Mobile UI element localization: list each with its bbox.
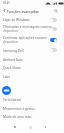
button[interactable]: Labs illustration [2, 86, 11, 95]
staticText: Labs [3, 75, 10, 79]
staticText: Chamadas e mensagens noutros [3, 25, 53, 29]
staticText: Android Auto [3, 58, 23, 62]
staticText: Continuar aplicações noutros [3, 36, 47, 40]
button[interactable]: Switch off [50, 18, 57, 22]
button[interactable] [0, 113, 64, 121]
button[interactable] [0, 15, 64, 24]
button[interactable] [0, 24, 64, 35]
staticText: dispositivos [3, 40, 18, 44]
button[interactable]: Recent apps [11, 123, 19, 131]
staticText: 09:45 [3, 1, 10, 5]
staticText: Ligar ao Windows [3, 18, 30, 22]
button[interactable]: Back [1, 7, 7, 13]
button[interactable] [0, 35, 64, 46]
staticText: Funções avançadas [7, 9, 39, 14]
staticText: dispositivos [3, 29, 18, 33]
button[interactable]: Back [41, 123, 49, 131]
button[interactable] [0, 72, 64, 80]
button[interactable]: Switch off [50, 48, 57, 52]
staticText: Tecla lateral [3, 98, 21, 102]
button[interactable] [0, 63, 64, 71]
button[interactable]: Search [53, 8, 59, 14]
button[interactable]: Switch on [50, 38, 57, 42]
button[interactable]: Switch off [50, 27, 57, 31]
button[interactable] [0, 105, 64, 113]
button[interactable] [0, 46, 64, 55]
staticText: Quick Share [3, 66, 21, 70]
staticText: Movimentos e gestos [3, 107, 35, 111]
button[interactable] [0, 55, 64, 63]
button[interactable] [0, 96, 64, 104]
staticText: Modo de uma mão [3, 115, 32, 119]
staticText: Samsung DeX [3, 49, 24, 53]
button[interactable]: Home [26, 123, 34, 131]
